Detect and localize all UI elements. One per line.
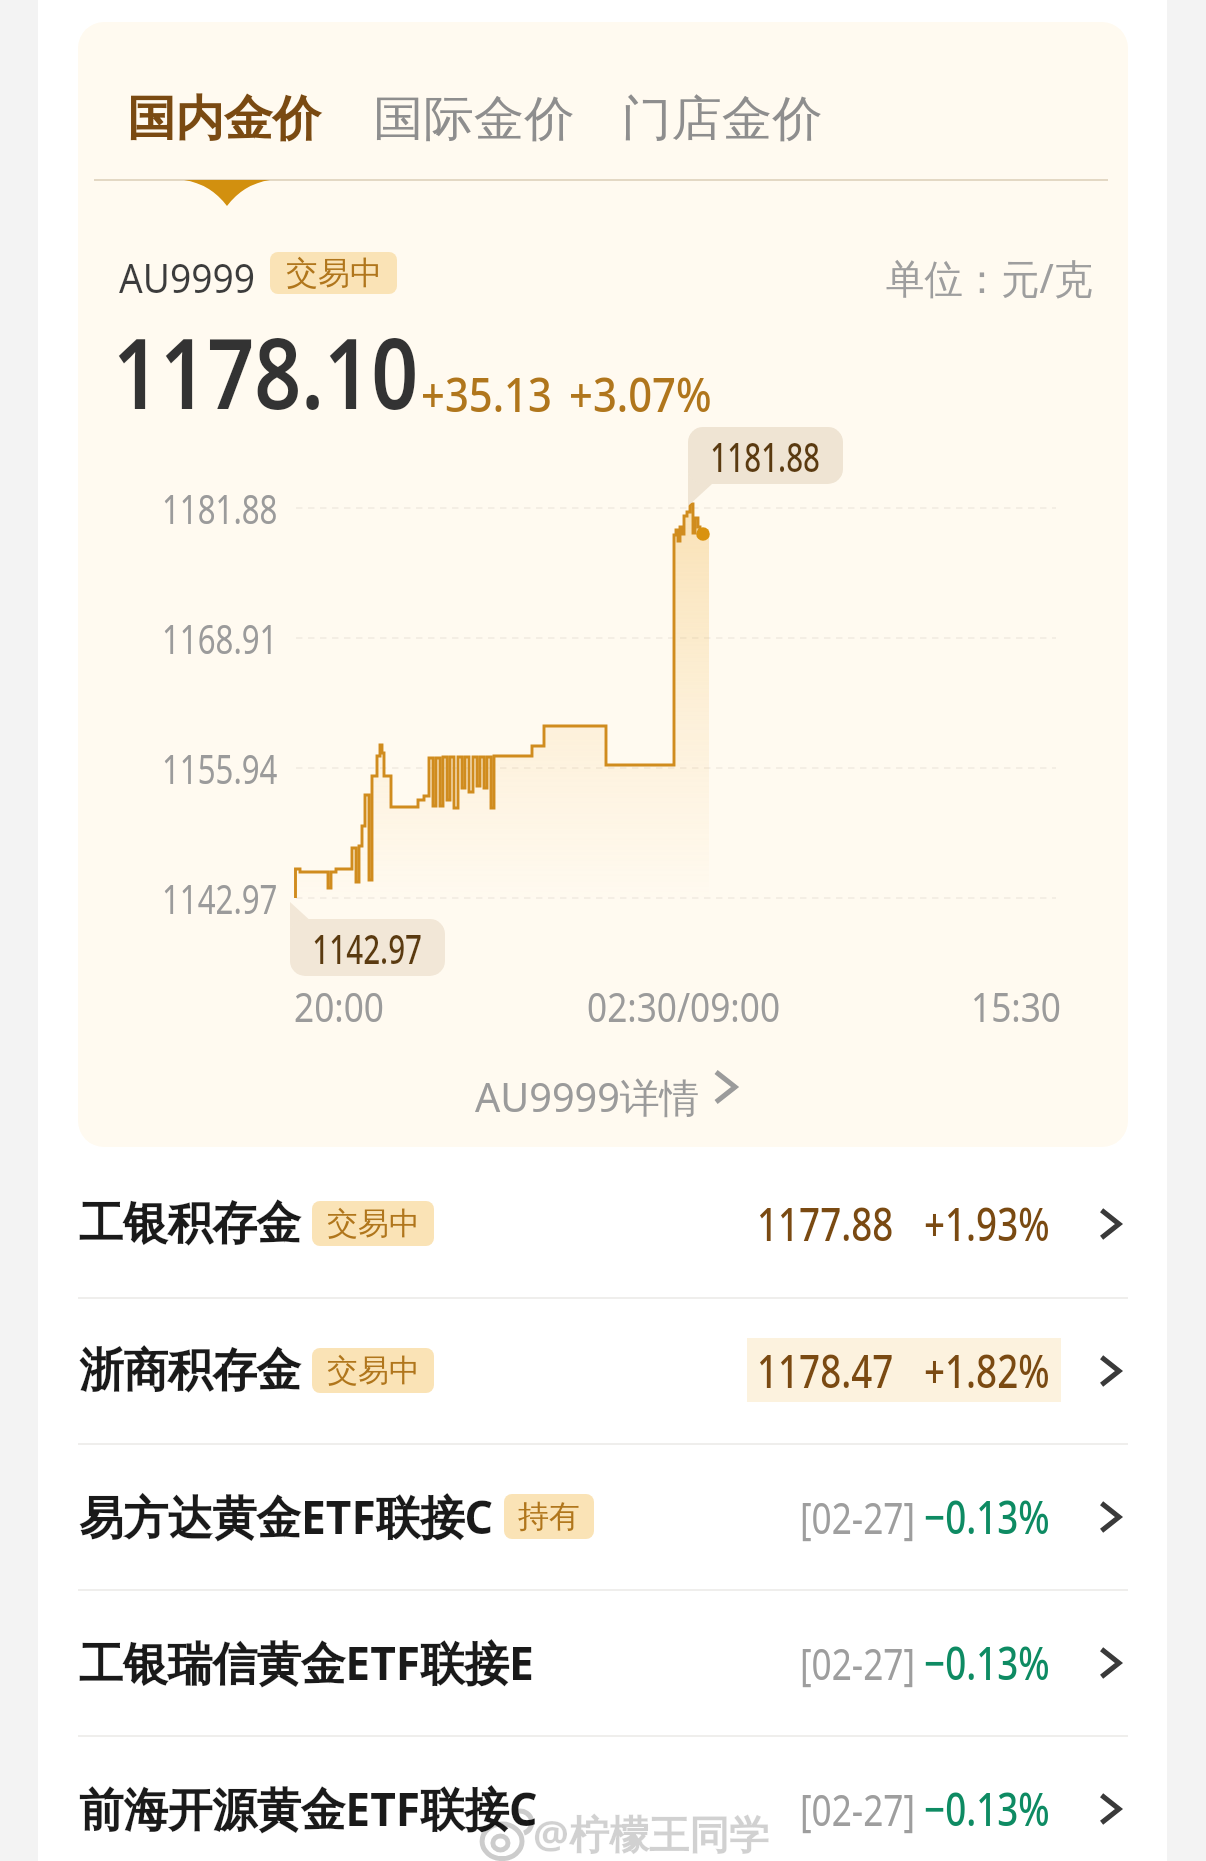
staticText: @柠檬王同学 [533, 1806, 769, 1861]
staticText: 1178.47 [757, 1339, 894, 1402]
button[interactable]: 浙商积存金 [78, 1298, 1128, 1443]
button[interactable]: 前海开源黄金ETF联接C [78, 1736, 1128, 1861]
staticText: 1142.97 [312, 921, 423, 975]
staticText: 1177.88 [757, 1192, 894, 1255]
staticText: 1155.94 [162, 741, 277, 795]
button[interactable]: 工银瑞信黄金ETF联接E [78, 1590, 1128, 1735]
staticText: +1.82% [924, 1339, 1050, 1402]
staticText: AU9999详情 [475, 1069, 700, 1124]
staticText: +3.07% [569, 361, 712, 426]
staticText: 前海开源黄金ETF联接C [79, 1777, 538, 1840]
staticText: 门店金价 [621, 89, 823, 149]
staticText: 15:30 [971, 979, 1062, 1033]
staticText: 1142.97 [162, 871, 277, 925]
staticText: [02-27] [800, 1487, 915, 1547]
button[interactable]: 国内金价 [115, 75, 331, 163]
button[interactable]: 门店金价 [609, 75, 825, 163]
staticText: 国际金价 [373, 89, 575, 149]
staticText: −0.13% [924, 1485, 1050, 1548]
staticText: 持有 [518, 1497, 580, 1536]
staticText: 交易中 [286, 253, 382, 293]
staticText: 20:00 [294, 979, 385, 1033]
button[interactable]: 国际金价 [361, 75, 577, 163]
staticText: 1181.88 [710, 429, 821, 483]
staticText: 易方达黄金ETF联接C [79, 1485, 494, 1548]
staticText: 02:30/09:00 [587, 979, 781, 1033]
staticText: 工银积存金 [79, 1195, 301, 1253]
staticText: [02-27] [800, 1633, 915, 1693]
staticText: +1.93% [924, 1192, 1050, 1255]
staticText: −0.13% [924, 1631, 1050, 1694]
staticText: 1181.88 [162, 481, 277, 535]
staticText: 单位：元/克 [886, 250, 1092, 305]
staticText: +35.13 [421, 361, 552, 426]
staticText: 1168.91 [162, 611, 277, 665]
staticText: AU9999 [119, 250, 256, 304]
staticText: 1178.10 [113, 304, 419, 437]
staticText: 浙商积存金 [79, 1342, 301, 1400]
staticText: 交易中 [327, 1351, 420, 1390]
staticText: 工银瑞信黄金ETF联接E [79, 1631, 534, 1694]
staticText: [02-27] [800, 1779, 915, 1839]
button[interactable]: 工银积存金 [78, 1151, 1128, 1296]
staticText: 国内金价 [127, 89, 321, 149]
button[interactable]: AU9999详情 [440, 1040, 770, 1140]
staticText: −0.13% [924, 1777, 1050, 1840]
staticText: 交易中 [327, 1204, 420, 1243]
button[interactable]: 易方达黄金ETF联接C [78, 1444, 1128, 1589]
